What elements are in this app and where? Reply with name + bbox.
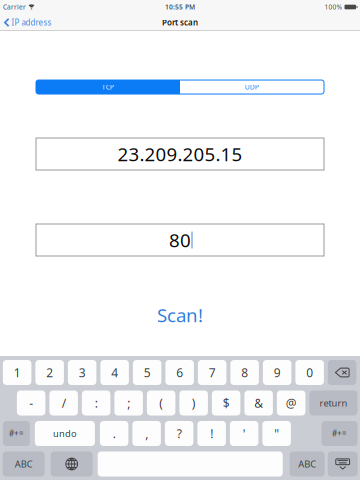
button[interactable]: 1 <box>3 360 31 385</box>
staticText: 7 <box>209 364 216 380</box>
button[interactable]: #+= <box>321 421 357 446</box>
button[interactable]: , <box>132 421 161 446</box>
staticText: #+= <box>332 428 347 439</box>
staticText: IP address <box>11 17 51 28</box>
staticText: undo <box>53 427 77 440</box>
button[interactable]: IP address <box>0 14 57 31</box>
button[interactable]: : <box>82 390 110 415</box>
button[interactable]: UDP <box>180 80 324 94</box>
staticText: 80 <box>169 228 191 252</box>
button[interactable]: 0 <box>295 360 324 385</box>
staticText: & <box>254 395 263 411</box>
staticText: 100% <box>324 3 342 11</box>
staticText: . <box>113 425 116 441</box>
staticText: : <box>95 395 98 411</box>
staticText: " <box>274 425 279 441</box>
staticText: $ <box>223 395 230 411</box>
staticText: TCP <box>102 83 114 91</box>
button[interactable]: Hide keyboard <box>328 451 358 476</box>
staticText: 6 <box>176 364 183 380</box>
staticText: 5 <box>144 364 151 380</box>
button[interactable]: " <box>262 421 291 446</box>
button[interactable]: / <box>49 390 78 415</box>
staticText: ; <box>127 395 130 411</box>
staticText: ? <box>177 425 182 441</box>
staticText: ABC <box>15 458 33 470</box>
staticText: 8 <box>241 364 248 380</box>
button[interactable]: ! <box>197 421 226 446</box>
button[interactable]: 4 <box>100 360 129 385</box>
staticText: ( <box>159 395 163 411</box>
button[interactable]: ' <box>230 421 258 446</box>
staticText: ABC <box>298 458 316 470</box>
staticText: @ <box>286 395 297 411</box>
button[interactable]: Scan! <box>36 306 324 324</box>
button[interactable]: Switch keyboard <box>51 451 93 476</box>
staticText: , <box>145 425 148 441</box>
button[interactable]: . <box>100 421 128 446</box>
staticText: ! <box>210 425 213 441</box>
staticText: ) <box>192 395 196 411</box>
button[interactable]: 8 <box>230 360 259 385</box>
button[interactable]: ; <box>114 390 143 415</box>
staticText: ' <box>243 425 246 441</box>
button[interactable]: 3 <box>68 360 96 385</box>
staticText: #+= <box>9 428 24 439</box>
button[interactable]: undo <box>35 421 95 446</box>
button[interactable]: @ <box>277 390 305 415</box>
button[interactable]: $ <box>212 390 240 415</box>
button[interactable]: 2 <box>35 360 64 385</box>
staticText: / <box>62 395 66 411</box>
button[interactable]: #+= <box>3 421 30 446</box>
staticText: 4 <box>111 364 118 380</box>
staticText: UDP <box>245 83 259 91</box>
staticText: Port scan <box>162 17 198 28</box>
staticText: 23.209.205.15 <box>117 142 242 166</box>
staticText: 2 <box>46 364 53 380</box>
button[interactable]: Delete <box>328 360 356 385</box>
staticText: 10:55 PM <box>165 3 195 11</box>
button[interactable]: & <box>244 390 273 415</box>
button[interactable]: TCP <box>36 80 180 94</box>
button[interactable]: ? <box>165 421 193 446</box>
staticText: Carrier <box>3 3 26 11</box>
button[interactable]: 5 <box>133 360 161 385</box>
button[interactable]: 7 <box>198 360 226 385</box>
button[interactable]: 9 <box>263 360 291 385</box>
button[interactable]: ABC <box>290 451 325 476</box>
staticText: 1 <box>14 364 21 380</box>
button[interactable]: 6 <box>165 360 194 385</box>
staticText: - <box>29 395 33 411</box>
staticText: 3 <box>79 364 86 380</box>
button[interactable]: - <box>17 390 45 415</box>
button[interactable]: ( <box>147 390 175 415</box>
button[interactable]: ) <box>179 390 208 415</box>
staticText: 9 <box>274 364 281 380</box>
staticText: Scan! <box>157 303 203 327</box>
staticText: 0 <box>306 364 313 380</box>
button[interactable]: return <box>309 390 357 415</box>
staticText: return <box>319 397 347 409</box>
button[interactable]: ABC <box>3 451 45 476</box>
